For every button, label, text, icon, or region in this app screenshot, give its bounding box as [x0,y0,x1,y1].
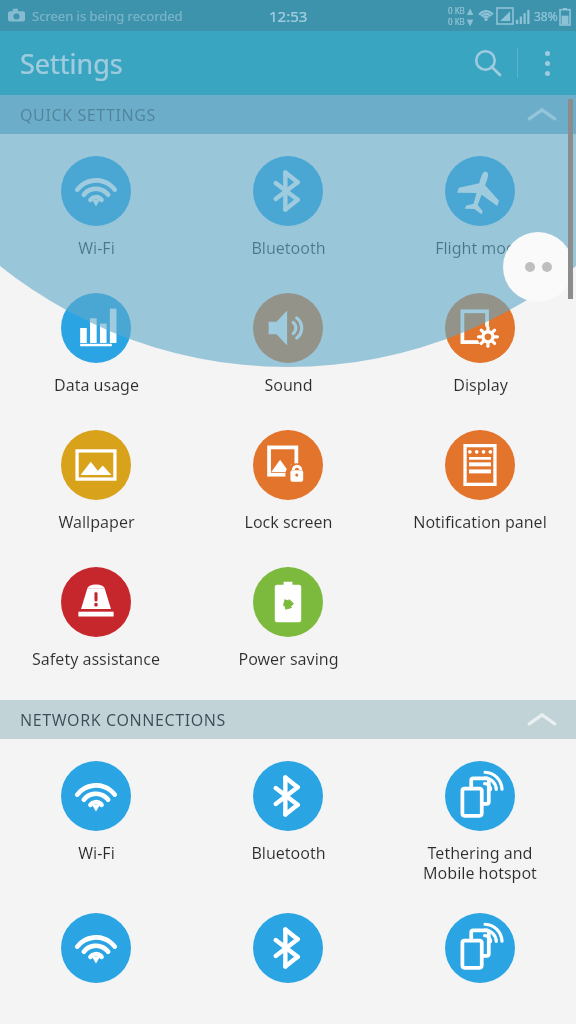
button[interactable]: Search [459,34,517,92]
button[interactable]: Power saving [192,565,384,672]
staticText: Sound [264,374,313,396]
staticText: 0 KB ▲ [448,5,474,16]
staticText: Screen is being recorded [32,7,183,25]
staticText: Display [453,374,508,396]
button[interactable]: Sound [192,291,384,398]
staticText: Power saving [238,648,339,670]
button[interactable]: Wi-Fi [0,154,192,261]
button[interactable] [384,911,576,985]
button[interactable]: Bluetooth [192,759,384,866]
staticText: Wi-Fi [78,842,115,864]
staticText: 0 KB ▼ [448,16,474,27]
button[interactable]: Display [384,291,576,398]
button[interactable]: NETWORK CONNECTIONS [0,700,576,739]
staticText: Data usage [54,374,139,396]
staticText: Notification panel [413,511,547,533]
button[interactable]: More options [518,34,576,92]
button[interactable]: Multi window handle [503,232,573,302]
staticText: QUICK SETTINGS [20,104,157,126]
staticText: Lock screen [244,511,333,533]
button[interactable]: Safety assistance [0,565,192,672]
button[interactable]: Tethering and Mobile hotspot [384,759,576,885]
staticText: Wi-Fi [78,237,115,259]
staticText: Bluetooth [251,842,326,864]
button[interactable]: Bluetooth [192,154,384,261]
staticText: Settings [20,45,123,82]
button[interactable]: Flight mode [384,154,576,261]
button[interactable]: Wi-Fi [0,759,192,866]
button[interactable]: Notification panel [384,428,576,535]
button[interactable]: QUICK SETTINGS [0,95,576,134]
staticText: Tethering and Mobile hotspot [423,842,537,883]
button[interactable]: Lock screen [192,428,384,535]
button[interactable]: Wallpaper [0,428,192,535]
staticText: Safety assistance [32,648,160,670]
button[interactable] [192,911,384,985]
staticText: Bluetooth [251,237,326,259]
staticText: Wallpaper [58,511,135,533]
staticText: 38% [534,8,558,24]
staticText: Flight mode [435,237,525,259]
button[interactable] [0,911,192,985]
staticText: NETWORK CONNECTIONS [20,709,226,731]
button[interactable]: Data usage [0,291,192,398]
staticText: 12:53 [269,6,308,26]
